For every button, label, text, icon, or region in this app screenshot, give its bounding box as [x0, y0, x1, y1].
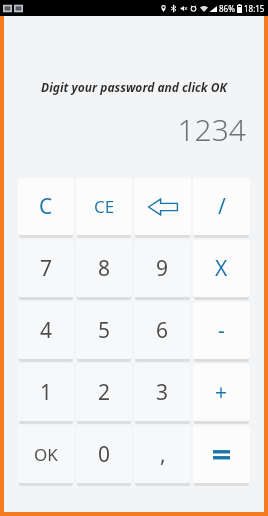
staticText: 3 — [156, 378, 169, 407]
staticText: X — [215, 254, 228, 283]
staticText: - — [218, 316, 225, 345]
button[interactable]: 7 — [18, 240, 74, 297]
button[interactable]: CE — [76, 178, 132, 235]
staticText: 1234 — [4, 109, 246, 150]
staticText: / — [218, 192, 226, 221]
staticText: 0 — [98, 440, 111, 469]
button[interactable]: Plus — [193, 364, 250, 421]
button[interactable]: C — [18, 178, 74, 235]
staticText: OK — [34, 443, 58, 466]
staticText: 9 — [156, 254, 169, 283]
button[interactable]: 5 — [76, 302, 132, 359]
button[interactable]: 1 — [18, 364, 74, 421]
staticText: 4 — [40, 316, 53, 345]
button[interactable]: 4 — [18, 302, 74, 359]
button[interactable]: Equals — [193, 426, 250, 483]
staticText: 86% — [219, 3, 235, 14]
button[interactable]: Minus — [193, 302, 250, 359]
button[interactable]: OK — [18, 426, 74, 483]
button[interactable]: , — [134, 426, 191, 483]
button[interactable]: Backspace — [134, 178, 191, 235]
staticText: C — [39, 192, 53, 221]
button[interactable]: 8 — [76, 240, 132, 297]
button[interactable]: Divide — [193, 178, 250, 235]
staticText: 1 — [40, 378, 53, 407]
button[interactable]: 0 — [76, 426, 132, 483]
staticText: 18:15 — [244, 3, 265, 14]
staticText: , — [160, 440, 166, 469]
button[interactable]: 2 — [76, 364, 132, 421]
staticText: 7 — [40, 254, 53, 283]
staticText: 6 — [156, 316, 169, 345]
staticText: 2 — [98, 378, 111, 407]
button[interactable]: 6 — [134, 302, 191, 359]
button[interactable]: 9 — [134, 240, 191, 297]
staticText: + — [215, 378, 228, 407]
staticText: Digit your password and click OK — [4, 79, 264, 95]
staticText: 8 — [98, 254, 111, 283]
button[interactable]: 3 — [134, 364, 191, 421]
staticText: CE — [94, 195, 115, 218]
button[interactable]: Multiply — [193, 240, 250, 297]
staticText: 5 — [98, 316, 111, 345]
